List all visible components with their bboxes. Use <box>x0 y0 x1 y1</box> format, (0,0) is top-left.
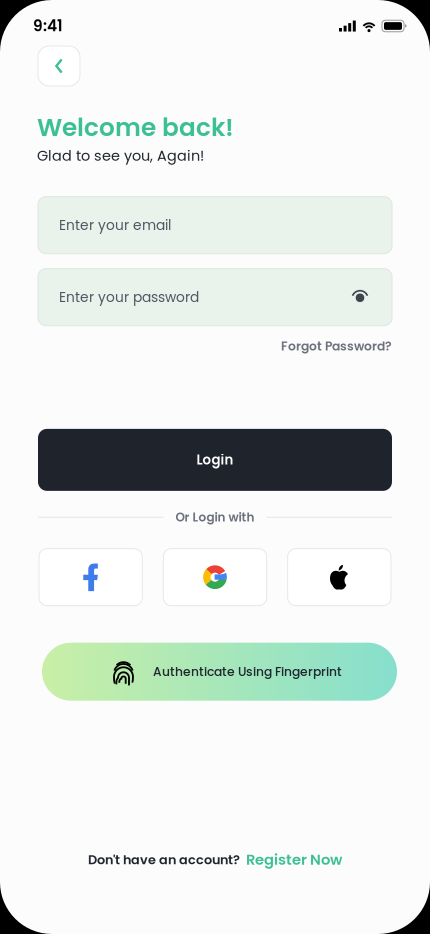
staticText: Register Now <box>246 849 342 870</box>
button[interactable]: Back <box>38 46 80 86</box>
staticText: 9:41 <box>33 15 63 37</box>
button[interactable]: Forgot Password? <box>281 338 392 355</box>
button[interactable]: Authenticate Using Fingerprint <box>42 643 397 701</box>
button[interactable]: Sign in with Google <box>163 549 267 606</box>
button[interactable]: Sign in with Facebook <box>39 549 142 606</box>
staticText: Don't have an account? <box>88 851 240 869</box>
button[interactable]: Show password <box>347 284 373 310</box>
staticText: Enter your email <box>59 216 171 235</box>
staticText: Welcome back! <box>37 110 234 144</box>
staticText: Glad to see you, Again! <box>37 145 204 166</box>
button[interactable]: Sign in with Apple <box>288 549 391 606</box>
staticText: Login <box>196 450 233 469</box>
button[interactable]: Login <box>38 429 392 491</box>
button[interactable]: Register Now <box>246 849 342 870</box>
staticText: Authenticate Using Fingerprint <box>153 663 342 680</box>
staticText: Forgot Password? <box>281 338 392 355</box>
staticText: Or Login with <box>175 509 254 526</box>
staticText: Enter your password <box>59 288 199 307</box>
